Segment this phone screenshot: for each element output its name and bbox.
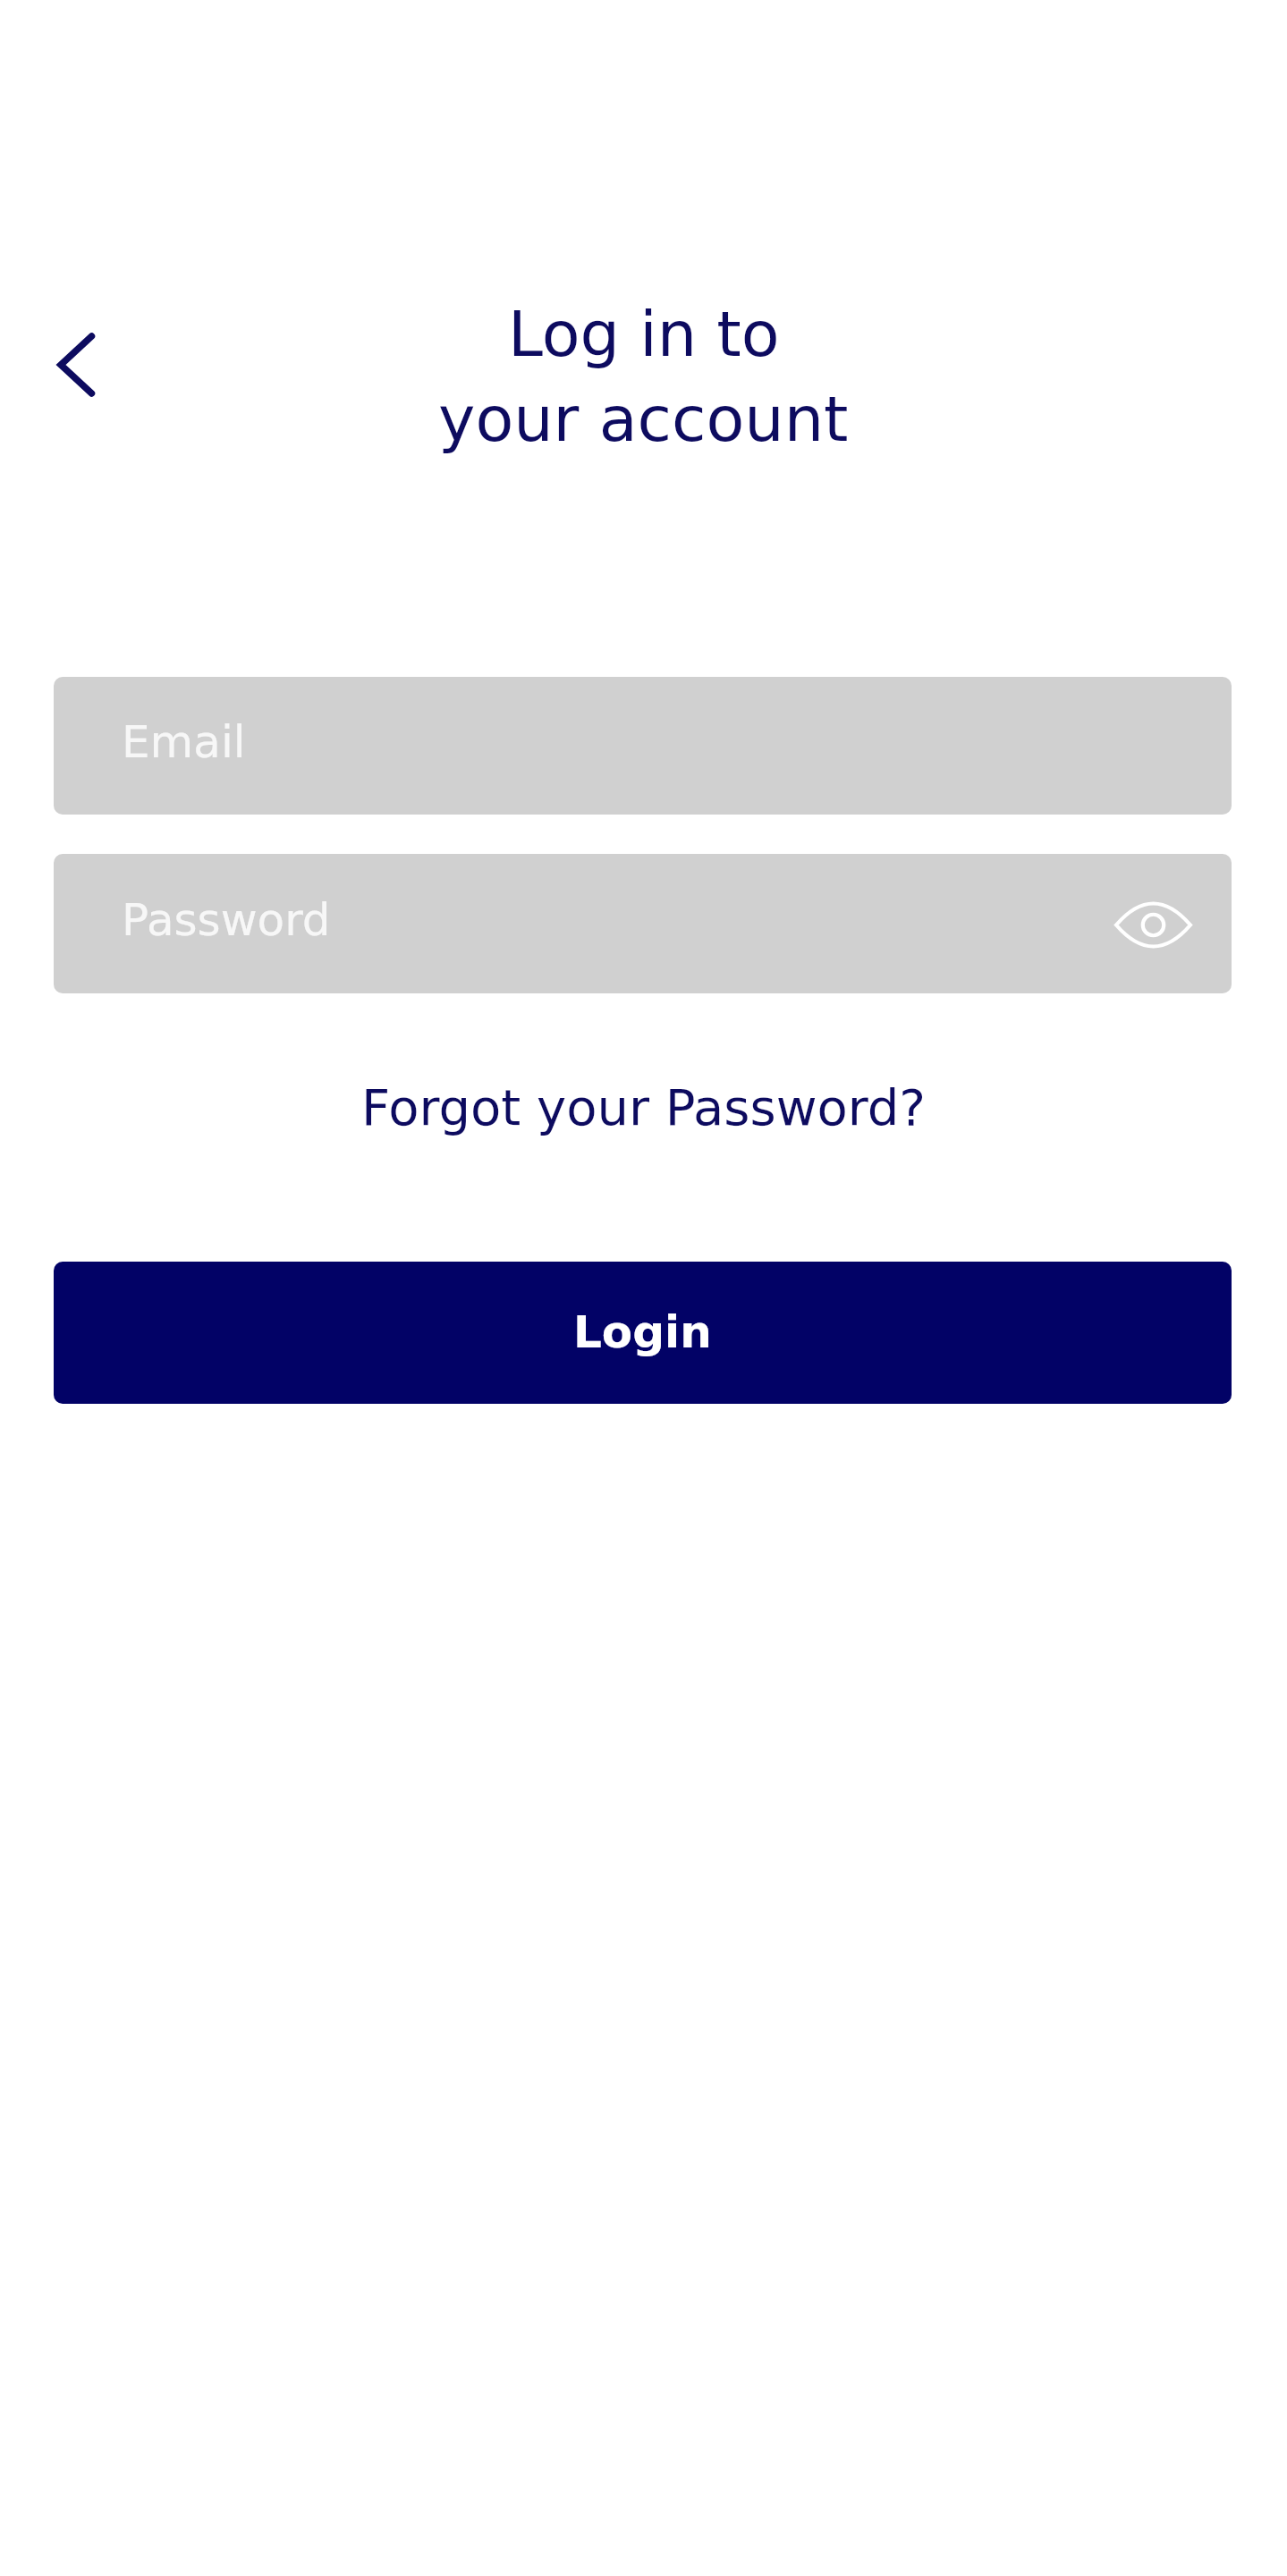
button[interactable]: Forgot your Password?: [361, 1078, 927, 1136]
button[interactable]: Password: [54, 854, 1232, 993]
button[interactable]: Email: [54, 677, 1232, 815]
staticText: Password: [122, 894, 331, 946]
staticText: Log in to: [508, 298, 780, 370]
staticText: Email: [122, 716, 246, 768]
staticText: Login: [573, 1306, 712, 1358]
button[interactable]: [32, 308, 122, 420]
button[interactable]: Login: [54, 1262, 1232, 1404]
staticText: your account: [438, 383, 849, 455]
button[interactable]: [1100, 891, 1207, 959]
staticText: Forgot your Password?: [361, 1078, 927, 1136]
